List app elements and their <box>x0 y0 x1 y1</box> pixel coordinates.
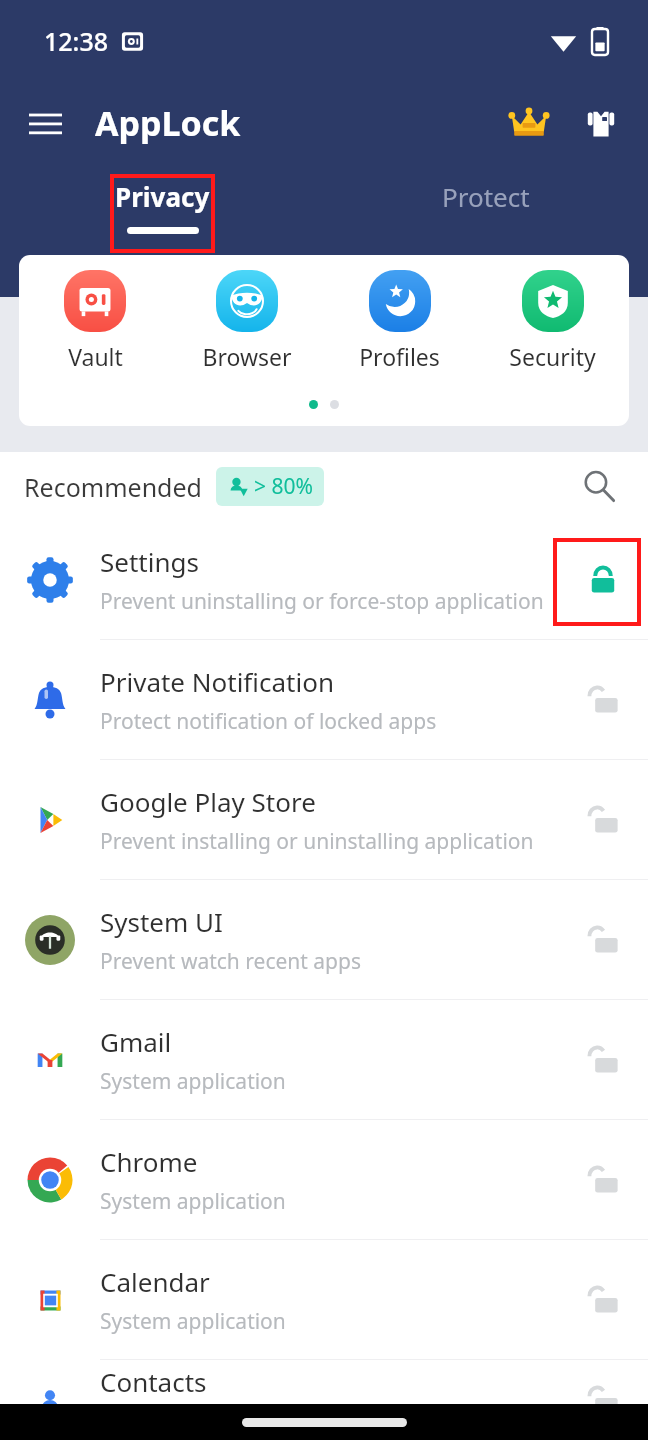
staticText: Recommended <box>24 470 202 504</box>
staticText: System application <box>100 1307 286 1336</box>
button[interactable]: Lock Google Play Store <box>558 760 648 879</box>
button[interactable]: Vault <box>19 267 171 375</box>
staticText: System application <box>100 1187 286 1216</box>
staticText: Profiles <box>359 341 440 372</box>
button[interactable]: VIP upgrade <box>500 94 558 152</box>
staticText: Google Play Store <box>100 784 316 819</box>
staticText: Calendar <box>100 1264 210 1299</box>
button[interactable]: Settings <box>0 520 648 640</box>
button[interactable]: Private Notification <box>0 640 648 760</box>
staticText: Protect <box>442 179 530 214</box>
button[interactable]: Lock Contacts <box>558 1360 648 1440</box>
button[interactable]: Lock Private Notification <box>558 640 648 759</box>
button[interactable]: Privacy <box>0 164 324 256</box>
staticText: Vault <box>68 341 123 372</box>
button[interactable]: Chrome <box>0 1120 648 1240</box>
staticText: AppLock <box>95 100 241 146</box>
staticText: Privacy <box>115 179 210 214</box>
staticText: 12:38 <box>44 24 109 58</box>
staticText: > 80% <box>254 472 313 501</box>
button[interactable]: Unlock Settings <box>558 520 648 639</box>
staticText: Prevent watch recent apps <box>100 947 362 976</box>
staticText: Chrome <box>100 1144 198 1179</box>
staticText: Private Notification <box>100 664 334 699</box>
button[interactable]: Calendar <box>0 1240 648 1360</box>
button[interactable]: Contacts <box>0 1360 648 1440</box>
button[interactable]: Browser <box>171 267 323 375</box>
button[interactable]: Search apps <box>570 457 628 515</box>
button[interactable]: Gmail <box>0 1000 648 1120</box>
button[interactable]: Open navigation menu <box>20 98 70 148</box>
button[interactable]: Lock Chrome <box>558 1120 648 1239</box>
button[interactable]: Protect <box>324 164 648 256</box>
staticText: Protect notification of locked apps <box>100 707 437 736</box>
staticText: System application <box>100 1407 286 1436</box>
button[interactable]: Lock Gmail <box>558 1000 648 1119</box>
button[interactable]: Security <box>476 267 629 375</box>
staticText: Browser <box>202 341 292 372</box>
button[interactable]: Lock System UI <box>558 880 648 999</box>
staticText: Contacts <box>100 1364 207 1399</box>
staticText: Prevent uninstalling or force-stop appli… <box>100 587 544 616</box>
button[interactable]: System UI <box>0 880 648 1000</box>
staticText: System application <box>100 1067 286 1096</box>
button[interactable]: Themes <box>572 94 630 152</box>
staticText: Settings <box>100 544 199 579</box>
staticText: System UI <box>100 904 223 939</box>
staticText: Prevent installing or uninstalling appli… <box>100 827 534 856</box>
staticText: Gmail <box>100 1024 172 1059</box>
button[interactable]: Google Play Store <box>0 760 648 880</box>
staticText: Security <box>509 341 596 372</box>
button[interactable]: Lock Calendar <box>558 1240 648 1359</box>
button[interactable]: Profiles <box>323 267 476 375</box>
